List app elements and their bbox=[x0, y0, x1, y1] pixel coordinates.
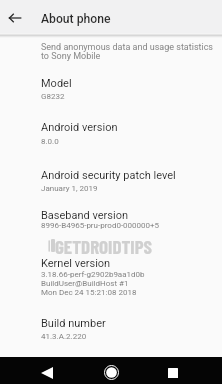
staticText: G8232 bbox=[41, 92, 65, 101]
staticText: Send anonymous data and usage statistics bbox=[41, 42, 214, 53]
staticText: to Sony Mobile bbox=[41, 51, 101, 62]
staticText: BuildUser@BuildHost #1 bbox=[41, 279, 129, 288]
button[interactable]: Home bbox=[96, 359, 126, 384]
staticText: Baseband version bbox=[41, 209, 129, 222]
staticText: 3.18.66-perf-g2902b9aa1d0b bbox=[41, 270, 145, 279]
button[interactable]: Back bbox=[32, 359, 62, 384]
staticText: Android version bbox=[41, 121, 118, 134]
staticText: 41.3.A.2.220 bbox=[41, 332, 87, 341]
button[interactable]: Navigate up bbox=[3, 6, 27, 30]
staticText: January 1, 2019 bbox=[41, 184, 98, 193]
staticText: Kernel version bbox=[41, 257, 111, 270]
staticText: 8996-B4965-pru-prod0-000000+5 bbox=[41, 221, 160, 230]
staticText: Model bbox=[41, 77, 72, 90]
staticText: Mon Dec 24 15:21:08 2018 bbox=[41, 288, 137, 297]
staticText: 8.0.0 bbox=[41, 137, 59, 146]
staticText: About phone bbox=[41, 12, 111, 26]
staticText: Build number bbox=[41, 317, 106, 330]
staticText: GETDROIDTIPS bbox=[55, 235, 153, 258]
staticText: Android security patch level bbox=[41, 169, 176, 182]
button[interactable]: Recent apps bbox=[158, 359, 188, 384]
